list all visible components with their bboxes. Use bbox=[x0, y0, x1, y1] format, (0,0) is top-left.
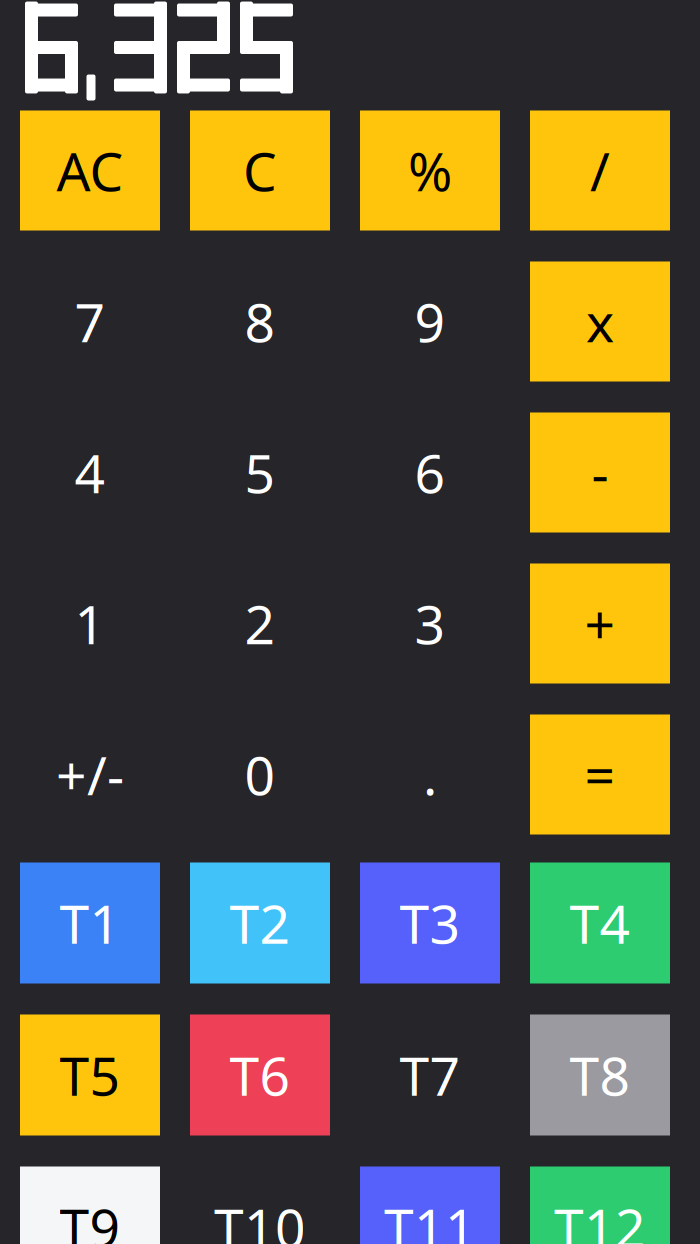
staticText: / bbox=[590, 135, 610, 206]
button[interactable]: % bbox=[360, 110, 500, 230]
staticText: . bbox=[423, 739, 437, 810]
staticText: T2 bbox=[229, 888, 290, 958]
staticText: T8 bbox=[569, 1040, 630, 1110]
button[interactable]: T11 bbox=[360, 1166, 500, 1244]
button[interactable]: 2 bbox=[190, 563, 330, 683]
button[interactable]: T3 bbox=[360, 862, 500, 983]
staticText: T12 bbox=[554, 1192, 646, 1244]
button[interactable]: . bbox=[360, 714, 500, 834]
button[interactable]: 0 bbox=[190, 714, 330, 834]
staticText: 4 bbox=[74, 437, 105, 508]
button[interactable]: T2 bbox=[190, 862, 330, 983]
staticText: T1 bbox=[59, 888, 120, 958]
button[interactable]: T12 bbox=[530, 1166, 670, 1244]
button[interactable]: 9 bbox=[360, 261, 500, 381]
staticText: 7 bbox=[74, 286, 105, 357]
staticText: 6 bbox=[414, 437, 445, 508]
button[interactable]: 6 bbox=[360, 412, 500, 532]
staticText: 5 bbox=[244, 437, 275, 508]
button[interactable]: +/- bbox=[20, 714, 160, 834]
staticText: 2 bbox=[244, 588, 275, 659]
staticText: x bbox=[586, 286, 614, 357]
button[interactable]: T10 bbox=[190, 1166, 330, 1244]
staticText: + bbox=[584, 588, 615, 659]
staticText: AC bbox=[56, 135, 123, 206]
button[interactable]: x bbox=[530, 261, 670, 381]
staticText: T7 bbox=[399, 1040, 460, 1110]
staticText: 1 bbox=[74, 588, 105, 659]
button[interactable]: 8 bbox=[190, 261, 330, 381]
button[interactable]: 4 bbox=[20, 412, 160, 532]
button[interactable]: 1 bbox=[20, 563, 160, 683]
button[interactable]: T1 bbox=[20, 862, 160, 983]
staticText: T9 bbox=[59, 1192, 120, 1244]
button[interactable]: 5 bbox=[190, 412, 330, 532]
staticText: - bbox=[591, 437, 608, 508]
button[interactable]: = bbox=[530, 714, 670, 834]
staticText: 9 bbox=[414, 286, 445, 357]
staticText: T3 bbox=[399, 888, 460, 958]
button[interactable]: + bbox=[530, 563, 670, 683]
staticText: % bbox=[408, 135, 452, 206]
staticText: C bbox=[243, 135, 277, 206]
button[interactable]: T7 bbox=[360, 1014, 500, 1135]
button[interactable]: - bbox=[530, 412, 670, 532]
staticText: T4 bbox=[569, 888, 630, 958]
button[interactable]: / bbox=[530, 110, 670, 230]
button[interactable]: 3 bbox=[360, 563, 500, 683]
button[interactable]: T4 bbox=[530, 862, 670, 983]
staticText: = bbox=[584, 739, 615, 810]
button[interactable]: T5 bbox=[20, 1014, 160, 1135]
button[interactable]: AC bbox=[20, 110, 160, 230]
button[interactable]: T8 bbox=[530, 1014, 670, 1135]
staticText: 8 bbox=[244, 286, 275, 357]
staticText: T5 bbox=[59, 1040, 120, 1110]
button[interactable]: C bbox=[190, 110, 330, 230]
button[interactable]: T9 bbox=[20, 1166, 160, 1244]
staticText: T11 bbox=[384, 1192, 476, 1244]
staticText: 0 bbox=[244, 739, 275, 810]
button[interactable]: 7 bbox=[20, 261, 160, 381]
staticText: T6 bbox=[229, 1040, 290, 1110]
staticText: +/- bbox=[56, 739, 124, 810]
button[interactable]: T6 bbox=[190, 1014, 330, 1135]
staticText: 3 bbox=[414, 588, 445, 659]
staticText: T10 bbox=[214, 1192, 306, 1244]
